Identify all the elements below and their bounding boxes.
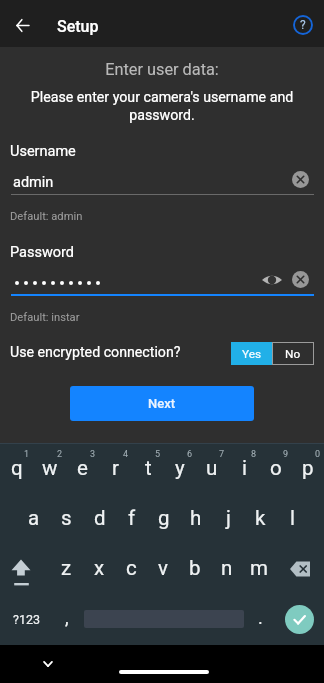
button[interactable]: Clear username	[291, 170, 309, 188]
staticText: l	[290, 506, 295, 530]
staticText: c	[126, 556, 137, 580]
button[interactable]: 4	[99, 444, 132, 494]
button[interactable]: 2	[33, 444, 66, 494]
staticText: p	[302, 456, 314, 480]
button[interactable]: .	[246, 594, 274, 644]
button[interactable]: Next	[70, 386, 254, 421]
staticText: Default: admin	[10, 210, 83, 223]
staticText: Setup	[57, 17, 99, 36]
staticText: s	[61, 506, 72, 530]
staticText: 4	[123, 449, 129, 460]
button[interactable]: k	[244, 494, 276, 544]
staticText: d	[94, 506, 106, 530]
staticText: ?	[300, 18, 306, 32]
staticText: 7	[219, 449, 225, 460]
staticText: 3	[90, 449, 96, 460]
button[interactable]: z	[50, 544, 83, 594]
staticText: h	[190, 506, 202, 530]
button[interactable]: j	[212, 494, 244, 544]
button[interactable]: Space	[82, 594, 246, 644]
staticText: Please enter your camera's username and …	[22, 89, 302, 124]
button[interactable]: Back	[8, 11, 37, 40]
staticText: No	[285, 347, 301, 361]
button[interactable]: No	[272, 342, 314, 365]
staticText: Password	[10, 244, 75, 261]
button[interactable]: v	[147, 544, 179, 594]
staticText: admin	[13, 174, 54, 191]
button[interactable]: Hide keyboard	[33, 649, 63, 679]
staticText: 8	[251, 449, 257, 460]
staticText: m	[250, 556, 268, 580]
staticText: ,	[65, 607, 69, 628]
staticText: 2	[57, 449, 63, 460]
staticText: w	[42, 456, 58, 480]
staticText: 9	[283, 449, 289, 460]
staticText: x	[94, 556, 105, 580]
button[interactable]: 7	[196, 444, 228, 494]
button[interactable]: Enter	[274, 594, 324, 644]
staticText: ?123	[13, 612, 40, 627]
button[interactable]: Backspace	[275, 544, 324, 594]
staticText: 0	[315, 449, 321, 460]
button[interactable]: h	[180, 494, 212, 544]
staticText: Next	[148, 396, 176, 411]
staticText: 5	[155, 449, 161, 460]
button[interactable]: 9	[260, 444, 292, 494]
staticText: e	[77, 456, 88, 480]
button[interactable]: l	[276, 494, 308, 544]
button[interactable]: 3	[66, 444, 99, 494]
staticText: j	[226, 506, 231, 530]
staticText: k	[255, 506, 266, 530]
button[interactable]: Shift	[0, 544, 50, 594]
staticText: Use encrypted connection?	[10, 344, 181, 361]
staticText: Enter user data:	[0, 60, 324, 79]
button[interactable]: 1	[0, 444, 33, 494]
button[interactable]: x	[83, 544, 115, 594]
staticText: i	[242, 456, 247, 480]
button[interactable]: s	[50, 494, 83, 544]
staticText: g	[158, 506, 170, 530]
button[interactable]: n	[211, 544, 243, 594]
button[interactable]: a	[17, 494, 50, 544]
staticText: f	[128, 506, 136, 530]
staticText: t	[145, 456, 152, 480]
staticText: n	[221, 556, 233, 580]
button[interactable]: f	[116, 494, 148, 544]
staticText: .	[258, 607, 263, 628]
staticText: z	[61, 556, 72, 580]
button[interactable]: 6	[164, 444, 196, 494]
staticText: 6	[187, 449, 193, 460]
button[interactable]: 5	[132, 444, 164, 494]
staticText: v	[158, 556, 168, 580]
button[interactable]: Help	[288, 10, 317, 39]
button[interactable]: c	[115, 544, 147, 594]
staticText: b	[189, 556, 201, 580]
staticText: a	[28, 506, 40, 530]
button[interactable]: Show password	[262, 270, 282, 290]
button[interactable]: d	[83, 494, 116, 544]
staticText: Username	[10, 143, 76, 160]
staticText: u	[206, 456, 218, 480]
staticText: Yes	[242, 347, 262, 361]
button[interactable]: 0	[292, 444, 324, 494]
staticText: Default: instar	[10, 311, 80, 324]
button[interactable]: Yes	[231, 342, 272, 365]
staticText: o	[270, 456, 282, 480]
staticText: q	[11, 456, 23, 480]
button[interactable]: ?123	[0, 594, 52, 644]
button[interactable]: m	[243, 544, 275, 594]
button[interactable]: b	[179, 544, 211, 594]
staticText: r	[112, 456, 119, 480]
button[interactable]: 8	[228, 444, 260, 494]
staticText: y	[175, 456, 185, 480]
button[interactable]: Clear password	[291, 270, 309, 288]
staticText: 1	[24, 449, 30, 460]
button[interactable]: ,	[52, 594, 82, 644]
button[interactable]: g	[148, 494, 180, 544]
